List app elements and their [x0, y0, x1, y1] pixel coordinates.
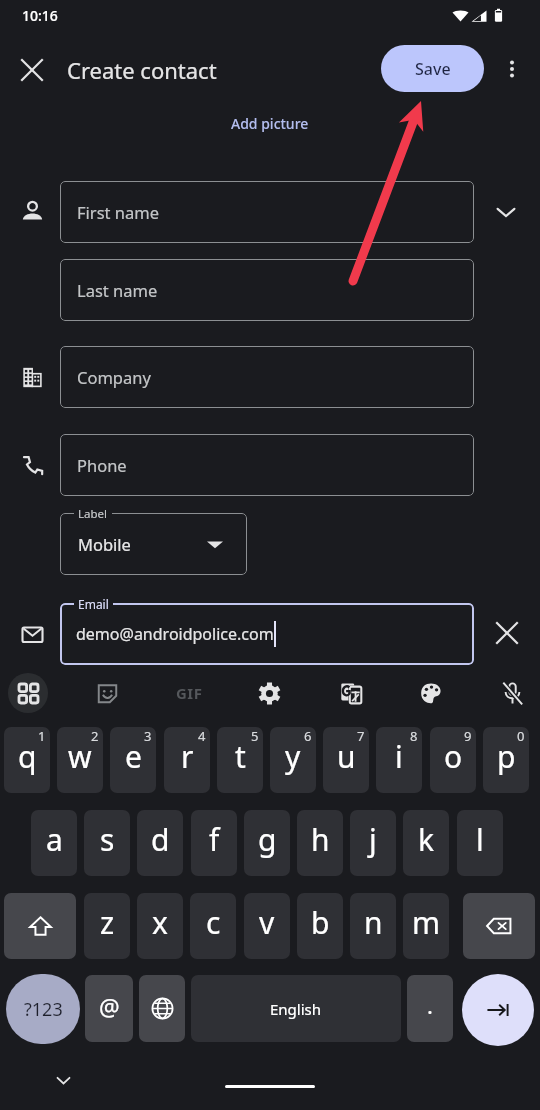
button[interactable]: k — [403, 810, 449, 876]
staticText: h — [311, 819, 330, 860]
button[interactable]: d — [137, 810, 183, 876]
button[interactable]: Stickers — [85, 671, 129, 715]
button[interactable]: n — [350, 893, 396, 959]
button[interactable]: Settings — [247, 671, 291, 715]
button[interactable]: p — [483, 727, 529, 793]
button[interactable]: Expand name fields — [486, 192, 526, 232]
staticText: q — [18, 736, 37, 777]
staticText: demo@androidpolice.com — [76, 623, 274, 645]
staticText: Create contact — [67, 55, 217, 85]
button[interactable]: u — [323, 727, 369, 793]
button[interactable]: Last name — [60, 259, 474, 321]
button[interactable]: l — [457, 810, 503, 876]
button[interactable]: Company — [60, 346, 474, 408]
button[interactable]: o — [430, 727, 476, 793]
staticText: z — [100, 902, 115, 943]
staticText: e — [125, 736, 142, 777]
button[interactable]: Change language — [139, 975, 185, 1042]
staticText: f — [209, 819, 220, 860]
button[interactable]: Hide keyboard — [48, 1065, 78, 1095]
button[interactable]: GIF — [167, 671, 211, 715]
staticText: Last name — [77, 279, 158, 301]
staticText: @ — [99, 991, 120, 1022]
staticText: p — [497, 736, 516, 777]
button[interactable]: a — [31, 810, 77, 876]
button[interactable]: Save — [381, 45, 484, 92]
button[interactable]: English — [191, 975, 401, 1042]
staticText: v — [259, 902, 275, 943]
button[interactable]: i — [376, 727, 422, 793]
staticText: c — [206, 902, 221, 943]
button[interactable]: e — [110, 727, 156, 793]
button[interactable]: g — [244, 810, 290, 876]
button[interactable]: Mobile — [60, 513, 247, 575]
button[interactable]: @ — [85, 975, 133, 1042]
button[interactable]: Voice input disabled — [490, 671, 534, 715]
staticText: m — [412, 902, 441, 943]
staticText: i — [395, 736, 403, 777]
staticText: 8 — [410, 727, 418, 745]
button[interactable]: z — [84, 893, 130, 959]
staticText: First name — [77, 201, 159, 223]
staticText: 4 — [198, 727, 206, 745]
button[interactable]: x — [137, 893, 183, 959]
staticText: g — [258, 819, 277, 860]
button[interactable]: Enter — [462, 974, 534, 1046]
button[interactable]: Add picture — [223, 106, 317, 141]
button[interactable]: Translate — [328, 671, 372, 715]
staticText: b — [311, 902, 330, 943]
button[interactable]: Clear email — [487, 613, 527, 653]
staticText: 7 — [357, 727, 365, 745]
staticText: Add picture — [231, 114, 309, 133]
staticText: Save — [415, 58, 451, 80]
button[interactable]: w — [57, 727, 103, 793]
staticText: 9 — [464, 727, 472, 745]
staticText: k — [418, 819, 435, 860]
button[interactable]: Toolbar menu — [8, 673, 48, 713]
staticText: 6 — [304, 727, 312, 745]
button[interactable]: Close — [10, 48, 54, 92]
staticText: l — [476, 819, 484, 860]
button[interactable]: Themes — [409, 671, 453, 715]
button[interactable]: m — [403, 893, 449, 959]
button[interactable]: v — [244, 893, 290, 959]
button[interactable]: f — [191, 810, 237, 876]
staticText: Email — [78, 596, 109, 612]
button[interactable]: ?123 — [6, 974, 80, 1044]
button[interactable]: . — [407, 975, 453, 1042]
staticText: 5 — [251, 727, 259, 745]
staticText: x — [152, 902, 168, 943]
button[interactable]: b — [297, 893, 343, 959]
button[interactable]: Backspace — [463, 893, 535, 959]
staticText: 2 — [91, 727, 99, 745]
staticText: a — [46, 819, 63, 860]
button[interactable]: q — [4, 727, 50, 793]
staticText: ?123 — [24, 997, 63, 1022]
button[interactable]: h — [297, 810, 343, 876]
staticText: Company — [77, 366, 151, 388]
button[interactable]: s — [84, 810, 130, 876]
staticText: o — [444, 736, 463, 777]
staticText: Mobile — [78, 533, 131, 555]
button[interactable]: demo@androidpolice.com — [60, 603, 474, 665]
button[interactable]: y — [270, 727, 316, 793]
staticText: d — [151, 819, 170, 860]
button[interactable]: Shift — [4, 893, 76, 959]
staticText: r — [181, 736, 194, 777]
staticText: GIF — [176, 683, 203, 703]
staticText: j — [369, 819, 377, 860]
staticText: Label — [78, 506, 108, 522]
button[interactable]: First name — [60, 181, 474, 243]
button[interactable]: j — [350, 810, 396, 876]
staticText: . — [427, 990, 433, 1020]
button[interactable]: Phone — [60, 434, 474, 496]
button[interactable]: More options — [489, 46, 534, 91]
button[interactable]: t — [217, 727, 263, 793]
staticText: 10:16 — [22, 6, 58, 25]
staticText: t — [235, 736, 246, 777]
staticText: s — [100, 819, 115, 860]
staticText: 0 — [517, 727, 525, 745]
button[interactable]: c — [190, 893, 236, 959]
button[interactable]: r — [164, 727, 210, 793]
staticText: English — [270, 999, 322, 1019]
